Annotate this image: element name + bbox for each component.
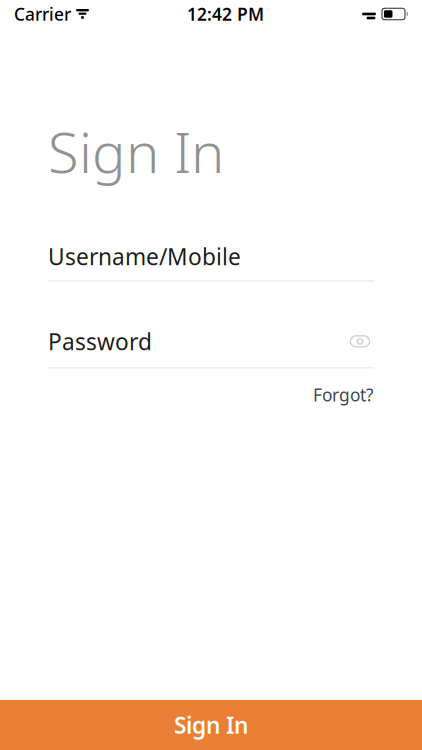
button[interactable]: Sign In	[0, 700, 422, 750]
button[interactable]: Forgot?	[313, 380, 374, 409]
staticText: Sign In	[174, 710, 248, 740]
staticText: Sign In	[48, 114, 224, 188]
staticText: 12:42 PM	[187, 2, 264, 25]
staticText: Password	[48, 326, 152, 356]
staticText: Forgot?	[313, 383, 374, 406]
staticText: Username/Mobile	[48, 241, 241, 271]
button[interactable]: Show password	[346, 329, 374, 353]
staticText: Carrier	[14, 2, 71, 25]
